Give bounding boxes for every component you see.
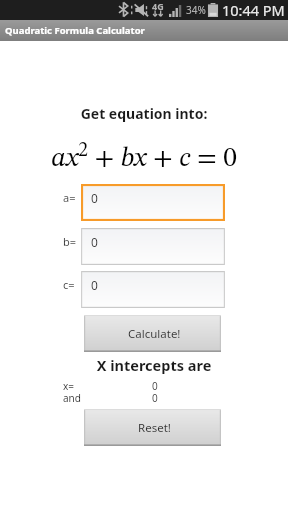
- staticText: 10:44 PM: [222, 0, 285, 20]
- staticText: 0: [152, 379, 158, 391]
- staticText: x=: [63, 379, 75, 391]
- staticText: X intercepts are: [20, 355, 288, 375]
- staticText: 4G: [152, 0, 164, 12]
- staticText: Get equation into:: [0, 104, 288, 123]
- staticText: 0: [91, 234, 98, 250]
- button[interactable]: 0: [81, 184, 225, 221]
- button[interactable]: 0: [81, 228, 225, 265]
- staticText: 0: [91, 277, 98, 293]
- staticText: Reset!: [138, 420, 171, 436]
- staticText: a=: [63, 190, 76, 205]
- button[interactable]: 0: [81, 271, 225, 308]
- staticText: 0: [91, 190, 98, 206]
- staticText: ax2 + bx + c = 0: [0, 141, 288, 173]
- staticText: Quadratic Formula Calculator: [5, 24, 145, 37]
- staticText: 0: [152, 391, 158, 403]
- staticText: 34%: [186, 3, 206, 17]
- staticText: c=: [63, 277, 75, 292]
- button[interactable]: Reset!: [84, 409, 221, 446]
- staticText: and: [63, 391, 81, 403]
- staticText: Calculate!: [128, 326, 181, 342]
- button[interactable]: Calculate!: [84, 315, 221, 352]
- staticText: b=: [63, 234, 77, 249]
